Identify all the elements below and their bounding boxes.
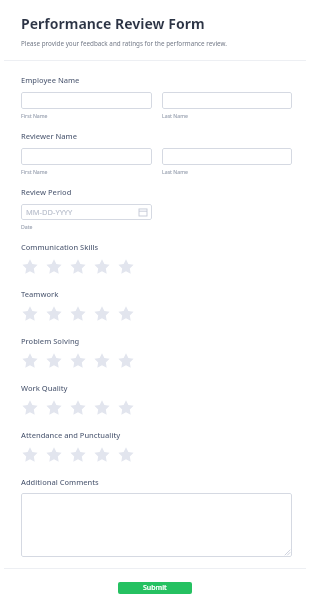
button[interactable]: Rate 1 stars [21,446,38,463]
staticText: Work Quality [21,383,68,393]
other: Pick date [139,208,147,216]
staticText: Submit [143,583,167,593]
staticText: Attendance and Punctuality [21,430,121,440]
staticText: Date [21,223,33,230]
button[interactable]: MM-DD-YYYY [21,204,152,220]
button[interactable]: Rate 4 stars [93,399,110,416]
staticText: Last Name [162,168,188,175]
staticText: Review Period [21,187,72,197]
button[interactable]: Rate 2 stars [45,399,62,416]
button[interactable] [21,493,292,557]
button[interactable]: Rate 2 stars [45,258,62,275]
button[interactable]: Rate 1 stars [21,258,38,275]
button[interactable]: Rate 3 stars [69,258,86,275]
button[interactable] [21,148,152,165]
staticText: Last Name [162,112,188,119]
button[interactable] [21,92,152,109]
staticText: First Name [21,168,48,175]
staticText: Problem Solving [21,336,80,346]
button[interactable]: Rate 1 stars [21,352,38,369]
button[interactable]: Rate 2 stars [45,305,62,322]
button[interactable]: Rate 1 stars [21,305,38,322]
button[interactable]: Rate 2 stars [45,446,62,463]
button[interactable] [162,148,292,165]
button[interactable]: Rate 1 stars [21,399,38,416]
button[interactable]: Rate 5 stars [117,258,134,275]
button[interactable]: Rate 4 stars [93,305,110,322]
button[interactable]: Rate 3 stars [69,305,86,322]
staticText: Teamwork [21,289,59,299]
button[interactable]: Rate 5 stars [117,446,134,463]
button[interactable]: Rate 3 stars [69,352,86,369]
button[interactable]: Submit [118,582,192,594]
staticText: First Name [21,112,48,119]
button[interactable]: Rate 4 stars [93,446,110,463]
button[interactable] [162,92,292,109]
staticText: Reviewer Name [21,131,78,141]
button[interactable]: Rate 3 stars [69,399,86,416]
button[interactable]: Rate 5 stars [117,399,134,416]
button[interactable]: Rate 5 stars [117,305,134,322]
button[interactable]: Rate 2 stars [45,352,62,369]
button[interactable]: Rate 3 stars [69,446,86,463]
staticText: MM-DD-YYYY [26,207,73,217]
staticText: Employee Name [21,75,80,85]
button[interactable]: Rate 5 stars [117,352,134,369]
staticText: Performance Review Form [21,14,205,33]
button[interactable]: Rate 4 stars [93,258,110,275]
staticText: Additional Comments [21,477,99,487]
staticText: Communication Skills [21,242,99,252]
button[interactable]: Rate 4 stars [93,352,110,369]
staticText: Please provide your feedback and ratings… [21,39,227,48]
